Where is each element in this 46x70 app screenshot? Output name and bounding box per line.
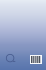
button[interactable]: Search (4, 52, 15, 63)
